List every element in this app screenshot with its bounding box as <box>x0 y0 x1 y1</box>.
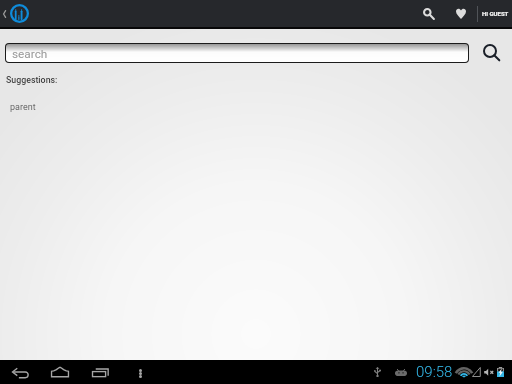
button[interactable]: Home <box>46 360 74 384</box>
staticText: 09:58 <box>416 363 453 381</box>
button[interactable]: Back <box>0 0 10 27</box>
button[interactable]: App home <box>10 4 29 23</box>
staticText: HI GUEST <box>482 10 509 17</box>
button[interactable]: Search <box>420 0 437 27</box>
button[interactable]: Recent apps <box>85 360 113 384</box>
staticText: parent <box>10 102 36 113</box>
staticText: Suggestions: <box>6 75 58 85</box>
button[interactable]: Favorites <box>451 0 471 27</box>
button[interactable]: Menu <box>132 360 149 384</box>
button[interactable]: Back <box>6 360 34 384</box>
staticText: search <box>12 47 48 61</box>
button[interactable]: search <box>6 44 468 62</box>
button[interactable]: parent <box>0 100 512 114</box>
button[interactable]: Search <box>478 40 503 65</box>
button[interactable]: HI GUEST <box>478 0 512 27</box>
